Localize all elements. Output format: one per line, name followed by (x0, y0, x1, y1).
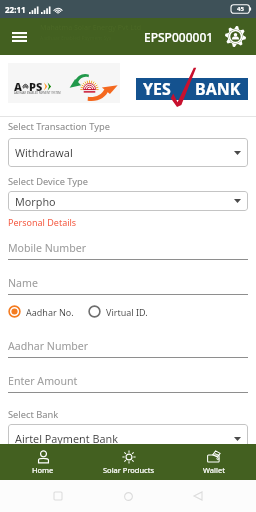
staticText: A (14, 79, 22, 94)
button[interactable]: Enter Amount (8, 374, 248, 393)
button[interactable]: Home (116, 484, 140, 508)
button[interactable]: Wallet (171, 444, 256, 480)
staticText: 45 (237, 5, 244, 13)
staticText: EPSP000001 (144, 29, 214, 45)
button[interactable]: Solar Products (86, 444, 171, 480)
staticText: Name (8, 276, 38, 290)
staticText: Airtel Payment Bank (15, 431, 118, 446)
button[interactable]: Virtual ID. (88, 305, 148, 318)
staticText: YES (143, 78, 171, 100)
staticText: Aadhar Number (8, 339, 89, 353)
staticText: Home (32, 465, 54, 475)
staticText: Personal Details (8, 216, 77, 228)
button[interactable]: Name (8, 276, 248, 295)
staticText: Solar Products (103, 465, 155, 475)
button[interactable]: Open navigation menu (5, 24, 33, 49)
staticText: BANK (195, 78, 241, 100)
staticText: Select Bank (8, 408, 59, 421)
button[interactable]: Morpho (8, 191, 248, 211)
button[interactable]: Recent apps (46, 484, 70, 508)
staticText: Enter Amount (8, 374, 78, 388)
staticText: Virtual ID. (106, 306, 148, 318)
staticText: PS (29, 79, 43, 94)
staticText: Wallet (203, 465, 225, 475)
staticText: 22:11 (5, 4, 26, 15)
staticText: Select Device Type (8, 175, 88, 188)
staticText: Mobile Number (8, 241, 87, 255)
staticText: Withdrawal (15, 145, 73, 160)
button[interactable]: Home (0, 444, 86, 480)
staticText: AADHAAR ENABLED PAYMENT SYSTEM (14, 91, 61, 95)
staticText: Aadhar No. (26, 306, 74, 318)
button[interactable]: Aadhar Number (8, 339, 248, 358)
staticText: Select Transaction Type (8, 120, 110, 133)
button[interactable]: Back (186, 484, 210, 508)
button[interactable]: Withdrawal (8, 138, 248, 167)
button[interactable]: Mobile Number (8, 241, 248, 260)
staticText: Morpho (15, 194, 56, 209)
button[interactable]: Aadhar No. (8, 305, 74, 318)
button[interactable]: Airtel Payment Bank (8, 424, 248, 453)
button[interactable]: Account settings (221, 22, 250, 51)
